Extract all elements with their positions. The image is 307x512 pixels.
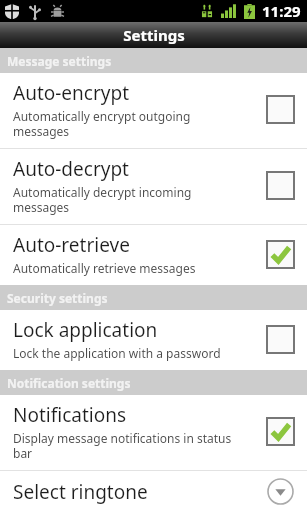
staticText: Lock the application with a password — [13, 345, 221, 361]
staticText: Notification settings — [7, 375, 131, 391]
button[interactable]: Checked — [266, 417, 295, 446]
button[interactable]: Auto-decrypt — [0, 149, 307, 224]
staticText: 11:29 — [262, 1, 301, 21]
staticText: Lock application — [13, 317, 158, 343]
staticText: Select ringtone — [13, 479, 266, 505]
staticText: Automatically encrypt outgoing messages — [13, 108, 191, 139]
button[interactable]: Lock application — [0, 310, 307, 370]
button[interactable]: Auto-retrieve — [0, 225, 307, 285]
staticText: Auto-retrieve — [13, 232, 130, 258]
button[interactable]: Select ringtone — [0, 471, 307, 512]
button[interactable]: Notifications — [0, 395, 307, 470]
staticText: Auto-encrypt — [13, 80, 130, 106]
staticText: Automatically retrieve messages — [13, 260, 196, 276]
button[interactable]: Checked — [266, 240, 295, 269]
button[interactable]: Auto-encrypt — [0, 73, 307, 148]
staticText: Security settings — [7, 290, 108, 306]
staticText: Message settings — [7, 53, 112, 69]
button[interactable]: Unchecked — [266, 95, 295, 124]
staticText: Automatically decrypt incoming messages — [13, 184, 192, 215]
button[interactable]: Open ringtone picker — [266, 477, 295, 506]
staticText: Display message notifications in status … — [13, 430, 232, 461]
staticText: Notifications — [13, 402, 127, 428]
staticText: Auto-decrypt — [13, 156, 129, 182]
button[interactable]: Unchecked — [266, 171, 295, 200]
button[interactable]: Unchecked — [266, 325, 295, 354]
staticText: Settings — [123, 25, 185, 45]
